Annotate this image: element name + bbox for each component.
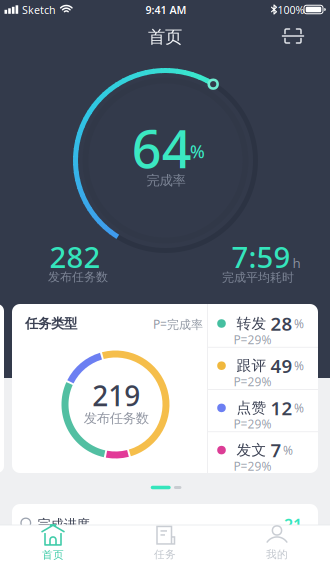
staticText: 9:41 AM <box>145 3 186 17</box>
staticText: 完成平均耗时 <box>222 270 294 285</box>
button[interactable]: 我的 <box>232 525 322 561</box>
staticText: % <box>294 358 304 374</box>
staticText: P=29% <box>233 331 271 347</box>
staticText: 首页 <box>148 26 182 48</box>
staticText: 49 <box>271 353 293 378</box>
staticText: % <box>294 315 304 331</box>
staticText: 219 <box>92 377 140 414</box>
staticText: 跟评 <box>237 357 267 375</box>
staticText: 发布任务数 <box>84 410 149 426</box>
staticText: P=完成率 <box>153 316 203 332</box>
staticText: P=29% <box>233 374 271 390</box>
staticText: 100% <box>277 3 304 17</box>
staticText: h <box>292 254 300 272</box>
staticText: P=29% <box>233 458 271 474</box>
staticText: 首页 <box>42 548 64 561</box>
button[interactable]: 任务 <box>120 525 210 561</box>
button[interactable]: 扫一扫 <box>282 28 304 44</box>
staticText: 点赞 <box>237 399 267 417</box>
staticText: 发文 <box>237 441 267 459</box>
staticText: 21 <box>284 514 302 535</box>
staticText: 转发 <box>237 314 267 332</box>
staticText: 完成进度 <box>37 516 89 533</box>
staticText: % <box>190 140 205 163</box>
staticText: 任务 <box>154 548 176 561</box>
staticText: Sketch <box>22 3 56 17</box>
staticText: P=29% <box>233 416 271 432</box>
staticText: % <box>283 442 293 458</box>
staticText: 我的 <box>266 548 288 561</box>
staticText: 发布任务数 <box>48 270 108 284</box>
staticText: % <box>294 400 304 416</box>
staticText: 64 <box>132 113 192 183</box>
staticText: 完成率 <box>146 172 185 189</box>
staticText: 7:59 <box>231 237 290 276</box>
staticText: 7 <box>271 438 282 462</box>
staticText: 282 <box>49 237 100 276</box>
button[interactable]: 完成进度 <box>12 504 318 554</box>
staticText: 12 <box>271 395 293 420</box>
staticText: 28 <box>271 311 293 336</box>
staticText: 任务类型 <box>25 315 77 332</box>
button[interactable]: 首页 <box>8 525 98 561</box>
